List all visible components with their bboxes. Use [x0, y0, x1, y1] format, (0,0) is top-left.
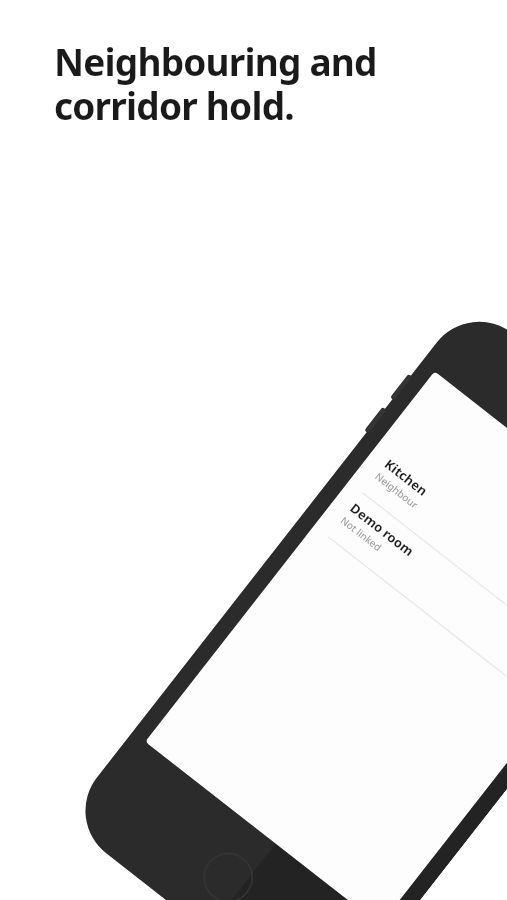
button[interactable]: Neighbouring and corridor hold onboardin… — [0, 0, 507, 900]
